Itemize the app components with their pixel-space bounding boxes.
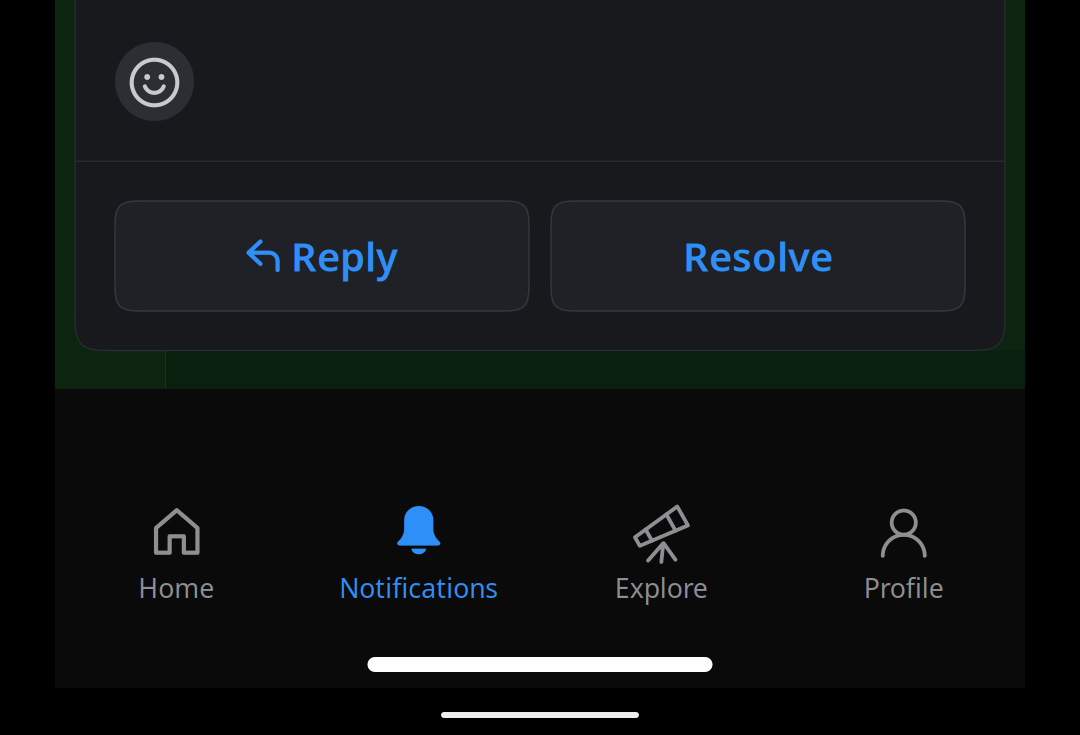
staticText: Reply xyxy=(291,229,398,282)
staticText: Explore xyxy=(615,570,708,605)
button[interactable]: Resolve xyxy=(551,201,965,311)
staticText: Profile xyxy=(864,570,944,605)
button[interactable]: Home xyxy=(55,503,297,605)
staticText: Resolve xyxy=(683,229,833,282)
button[interactable]: Explore xyxy=(540,503,782,605)
staticText: Notifications xyxy=(339,570,498,605)
staticText: Home xyxy=(138,570,214,605)
button[interactable]: Notifications xyxy=(297,503,540,605)
button[interactable]: Reply xyxy=(115,201,529,311)
button[interactable]: Profile xyxy=(782,503,1025,605)
button[interactable]: Add reaction xyxy=(115,42,194,121)
